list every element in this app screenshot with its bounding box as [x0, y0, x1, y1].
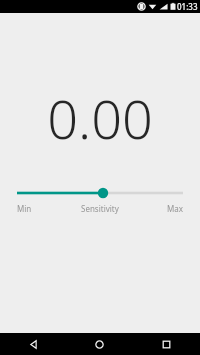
button[interactable]: Home — [66, 333, 133, 355]
button[interactable] — [17, 185, 183, 201]
staticText: Min — [17, 203, 32, 214]
staticText: 01:33 — [177, 1, 198, 12]
staticText: 0.00 — [47, 81, 153, 155]
button[interactable]: Back — [0, 333, 66, 355]
staticText: Sensitivity — [81, 203, 119, 214]
button[interactable]: Recents — [133, 333, 200, 355]
staticText: Max — [167, 203, 183, 214]
